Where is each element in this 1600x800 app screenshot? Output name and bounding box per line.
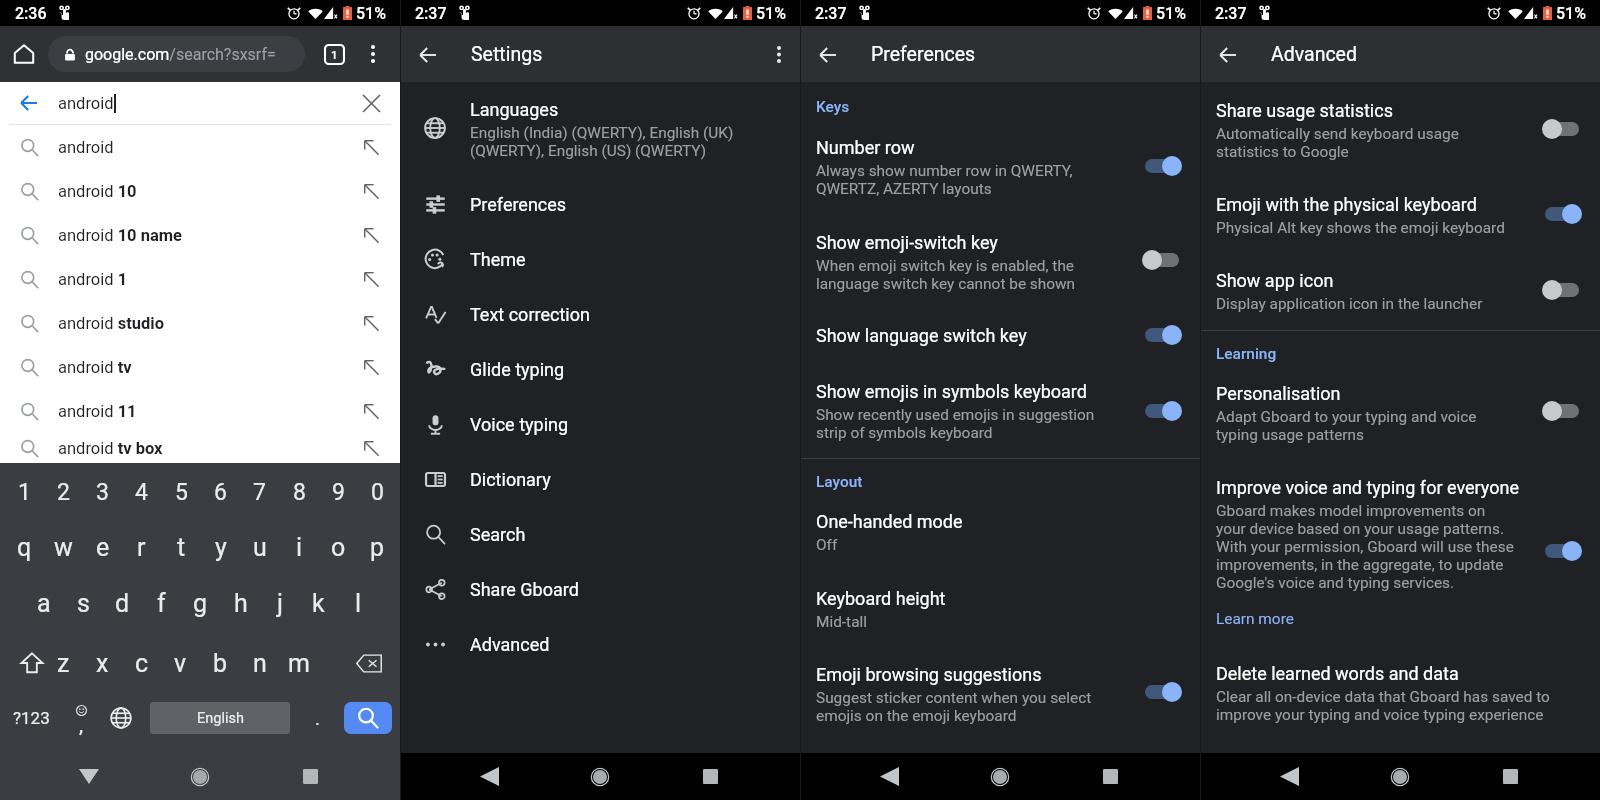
button[interactable]: Switch tabs	[315, 26, 354, 82]
button[interactable]: Enabled	[1534, 190, 1590, 238]
button[interactable]: o	[319, 525, 358, 569]
button[interactable]: Enabled	[1134, 142, 1190, 190]
button[interactable]: Hide keyboard	[69, 753, 109, 800]
button[interactable]: 9	[319, 470, 358, 514]
button[interactable]: Recent apps	[1090, 753, 1130, 800]
button[interactable]: Enabled	[1534, 527, 1590, 575]
button[interactable]: Share Gboard	[400, 579, 800, 600]
button[interactable]: g	[181, 581, 220, 625]
button[interactable]: 6	[201, 470, 240, 514]
button[interactable]: v	[161, 641, 200, 685]
button[interactable]: Enabled	[1134, 668, 1190, 716]
button[interactable]: Backspace	[347, 641, 390, 685]
button[interactable]: r	[122, 525, 161, 569]
button[interactable]: Emoji and comma	[60, 695, 102, 741]
button[interactable]: q	[5, 525, 44, 569]
button[interactable]: android 10	[0, 169, 400, 213]
button[interactable]: Shift	[10, 641, 53, 685]
button[interactable]: Languages	[400, 99, 800, 160]
button[interactable]: 7	[240, 470, 279, 514]
button[interactable]: Preferences	[400, 194, 800, 215]
button[interactable]: Improve voice and typing for everyone	[1200, 477, 1600, 628]
button[interactable]: android	[0, 125, 400, 169]
button[interactable]: Recent apps	[290, 753, 330, 800]
button[interactable]: Back	[0, 82, 58, 124]
button[interactable]: More options	[758, 26, 800, 82]
button[interactable]: 2	[44, 470, 83, 514]
button[interactable]: .	[299, 695, 337, 741]
button[interactable]: 5	[162, 470, 201, 514]
button[interactable]: w	[44, 525, 83, 569]
button[interactable]: u	[240, 525, 279, 569]
button[interactable]: Theme	[400, 249, 800, 270]
button[interactable]: k	[299, 581, 338, 625]
button[interactable]: Advanced	[400, 634, 800, 655]
button[interactable]: x	[83, 641, 122, 685]
button[interactable]: Number row	[800, 137, 1200, 198]
button[interactable]: Enabled	[1134, 387, 1190, 435]
button[interactable]: Delete learned words and data	[1200, 663, 1600, 724]
button[interactable]: 4	[122, 470, 161, 514]
button[interactable]: Keyboard height	[800, 588, 1200, 631]
button[interactable]: Home	[1380, 753, 1420, 800]
button[interactable]: h	[221, 581, 260, 625]
button[interactable]: Show emojis in symbols keyboard	[800, 381, 1200, 442]
button[interactable]: 3	[83, 470, 122, 514]
button[interactable]: b	[201, 641, 240, 685]
button[interactable]: Show language switch key	[800, 325, 1200, 346]
button[interactable]: 0	[358, 470, 397, 514]
button[interactable]: Disabled	[1134, 236, 1190, 284]
button[interactable]: Back	[1269, 753, 1309, 800]
button[interactable]: p	[358, 525, 397, 569]
button[interactable]: d	[103, 581, 142, 625]
button[interactable]: Emoji browsing suggestions	[800, 664, 1200, 725]
button[interactable]: Voice typing	[400, 414, 800, 435]
button[interactable]: t	[162, 525, 201, 569]
button[interactable]: z	[44, 641, 83, 685]
button[interactable]: Text correction	[400, 304, 800, 325]
button[interactable]: Dictionary	[400, 469, 800, 490]
button[interactable]: google.com/search?sxsrf=	[48, 36, 305, 72]
button[interactable]: y	[201, 525, 240, 569]
button[interactable]: Emoji with the physical keyboard	[1200, 194, 1600, 237]
button[interactable]: Recent apps	[690, 753, 730, 800]
button[interactable]: Clear	[343, 82, 400, 124]
button[interactable]: Search	[400, 524, 800, 545]
button[interactable]: android 10 name	[0, 213, 400, 257]
button[interactable]: Share usage statistics	[1200, 100, 1600, 161]
button[interactable]: Navigate up	[1200, 26, 1256, 82]
button[interactable]: l	[339, 581, 378, 625]
button[interactable]: n	[240, 641, 279, 685]
button[interactable]: i	[280, 525, 319, 569]
button[interactable]: android studio	[0, 301, 400, 345]
button[interactable]: Personalisation	[1200, 383, 1600, 444]
button[interactable]: Home	[5, 26, 43, 82]
button[interactable]: Enabled	[1134, 311, 1190, 359]
button[interactable]: Navigate up	[800, 26, 856, 82]
button[interactable]: android tv	[0, 345, 400, 389]
button[interactable]: Home	[580, 753, 620, 800]
button[interactable]: Home	[980, 753, 1020, 800]
button[interactable]: s	[64, 581, 103, 625]
button[interactable]: android 11	[0, 389, 400, 433]
button[interactable]: One-handed mode	[800, 511, 1200, 554]
button[interactable]: Disabled	[1534, 105, 1590, 153]
button[interactable]: android tv box	[0, 433, 400, 463]
button[interactable]: Show app icon	[1200, 270, 1600, 313]
button[interactable]: Show emoji-switch key	[800, 232, 1200, 293]
button[interactable]: Back	[469, 753, 509, 800]
button[interactable]: Disabled	[1534, 266, 1590, 314]
button[interactable]: Home	[180, 753, 220, 800]
button[interactable]: Search	[344, 702, 392, 734]
button[interactable]: c	[122, 641, 161, 685]
button[interactable]: f	[142, 581, 181, 625]
button[interactable]: a	[24, 581, 63, 625]
button[interactable]: m	[279, 641, 318, 685]
button[interactable]: Navigate up	[400, 26, 456, 82]
button[interactable]: English	[150, 702, 290, 734]
button[interactable]: 8	[280, 470, 319, 514]
button[interactable]: j	[260, 581, 299, 625]
button[interactable]: More options	[355, 26, 390, 82]
button[interactable]: Disabled	[1534, 387, 1590, 435]
button[interactable]: android 1	[0, 257, 400, 301]
